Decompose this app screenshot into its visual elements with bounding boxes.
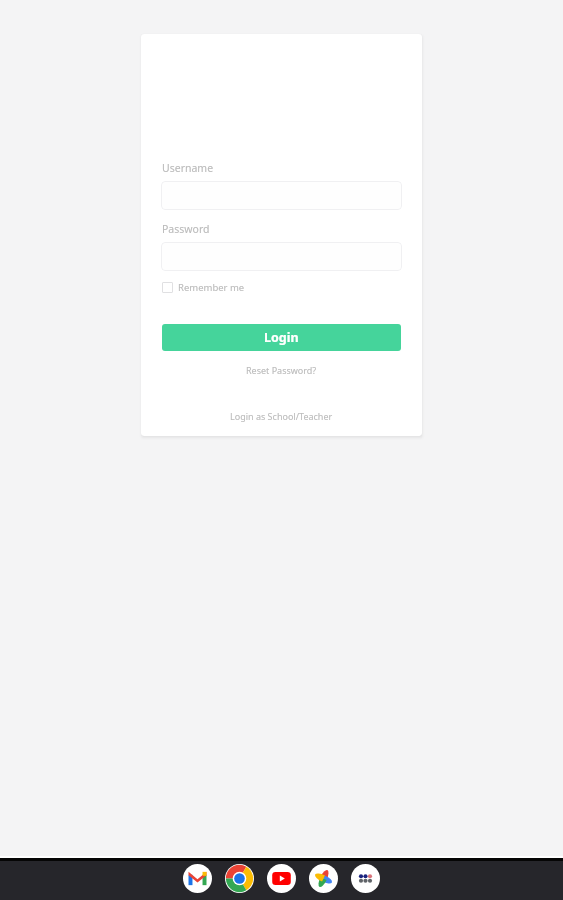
button[interactable]: Chrome [225, 864, 254, 893]
button[interactable]: YouTube [267, 864, 296, 893]
button[interactable]: Remember me [162, 281, 245, 294]
staticText: Username [162, 161, 214, 175]
button[interactable]: Gmail [183, 864, 212, 893]
button[interactable] [161, 242, 402, 271]
button[interactable]: Login as School/Teacher [230, 410, 333, 422]
button[interactable]: Login [162, 324, 401, 351]
button[interactable]: All apps [351, 864, 380, 893]
button[interactable]: Reset Password? [246, 364, 317, 376]
staticText: Remember me [178, 281, 245, 294]
staticText: Login [264, 329, 299, 346]
staticText: Password [162, 222, 210, 236]
button[interactable]: Photos [309, 864, 338, 893]
button[interactable] [161, 181, 402, 210]
